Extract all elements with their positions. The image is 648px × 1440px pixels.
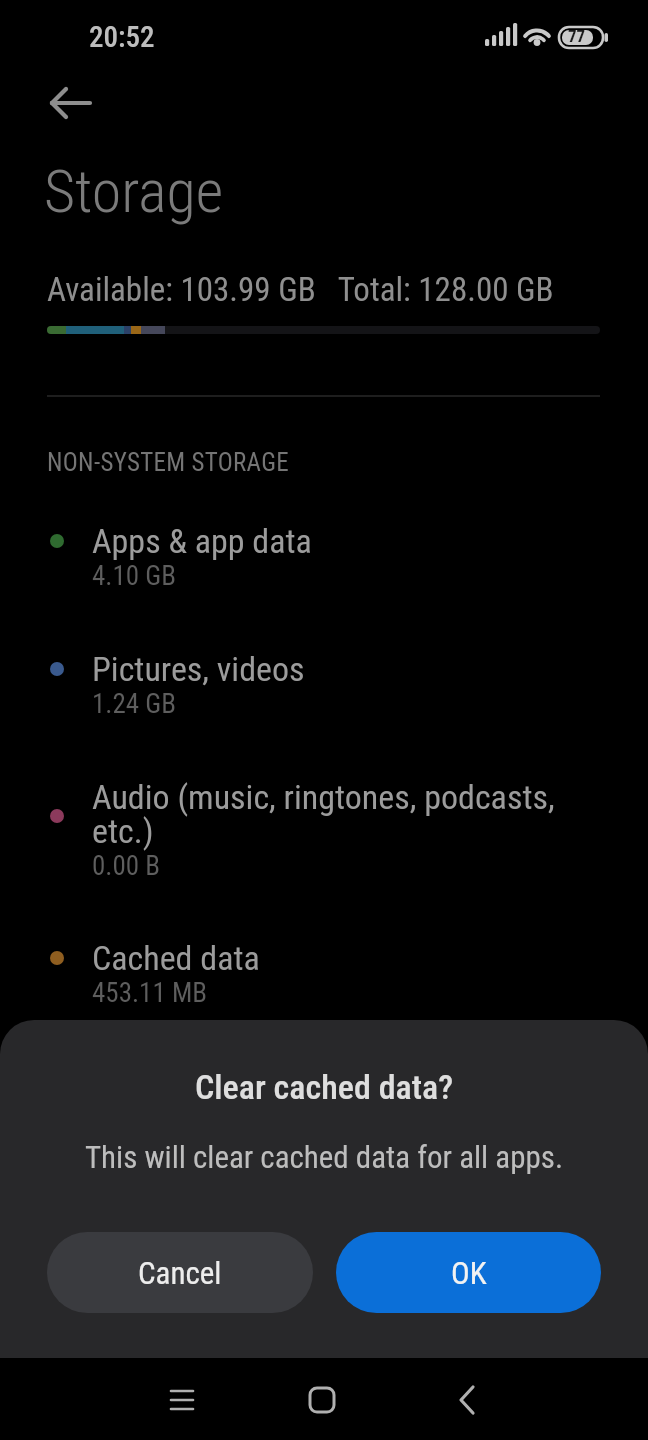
button[interactable]	[0, 633, 648, 733]
staticText: Available: 103.99 GB Total: 128.00 GB	[47, 270, 554, 309]
button[interactable]: OK	[336, 1232, 601, 1313]
staticText: 4.10 GB	[92, 560, 176, 592]
button[interactable]	[152, 1370, 212, 1430]
button[interactable]	[0, 765, 648, 895]
staticText: OK	[451, 1255, 487, 1291]
staticText: This will clear cached data for all apps…	[0, 1139, 648, 1175]
staticText: 77	[568, 26, 586, 46]
button[interactable]: Cancel	[47, 1232, 313, 1313]
staticText: 453.11 MB	[92, 977, 208, 1009]
staticText: 1.24 GB	[92, 688, 176, 720]
staticText: Cached data	[92, 938, 260, 978]
button[interactable]	[437, 1370, 497, 1430]
button[interactable]	[38, 80, 98, 126]
button[interactable]	[0, 925, 648, 1020]
staticText: Clear cached data?	[0, 1067, 648, 1107]
staticText: Apps & app data	[92, 521, 312, 561]
staticText: Storage	[44, 156, 224, 226]
button[interactable]	[0, 505, 648, 605]
button[interactable]	[292, 1370, 352, 1430]
staticText: 20:52	[89, 20, 155, 54]
staticText: Pictures, videos	[92, 649, 305, 689]
staticText: etc.)	[92, 811, 154, 851]
staticText: 0.00 B	[92, 850, 161, 882]
staticText: Audio (music, ringtones, podcasts,	[92, 777, 555, 817]
staticText: Cancel	[138, 1255, 222, 1291]
staticText: NON-SYSTEM STORAGE	[47, 448, 289, 477]
